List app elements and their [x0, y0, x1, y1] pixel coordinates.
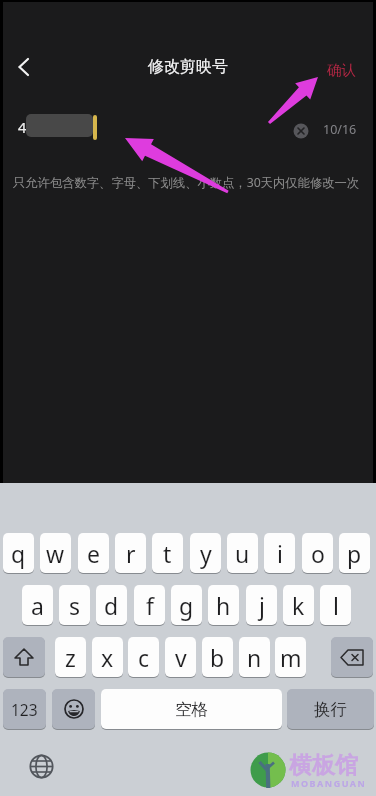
button[interactable]: [3, 637, 45, 677]
staticText: 4: [18, 117, 27, 137]
button[interactable]: [8, 52, 38, 82]
button[interactable]: w: [40, 533, 71, 573]
button[interactable]: [28, 753, 55, 780]
staticText: 123: [11, 699, 38, 720]
staticText: w: [46, 538, 65, 569]
button[interactable]: r: [115, 533, 146, 573]
button[interactable]: f: [134, 585, 165, 625]
button[interactable]: [292, 122, 310, 140]
staticText: n: [247, 642, 262, 673]
button[interactable]: n: [239, 637, 270, 677]
staticText: i: [277, 538, 283, 569]
staticText: m: [280, 642, 302, 673]
staticText: v: [175, 642, 187, 673]
button[interactable]: g: [171, 585, 202, 625]
staticText: u: [235, 538, 250, 569]
staticText: o: [311, 538, 325, 569]
button[interactable]: 空格: [101, 689, 282, 729]
staticText: p: [347, 538, 362, 569]
staticText: e: [87, 538, 100, 569]
staticText: j: [259, 590, 265, 621]
staticText: 修改剪映号: [148, 57, 228, 77]
staticText: s: [69, 590, 81, 621]
staticText: k: [292, 590, 305, 621]
button[interactable]: e: [78, 533, 109, 573]
button[interactable]: z: [55, 637, 86, 677]
button[interactable]: x: [92, 637, 123, 677]
staticText: c: [138, 642, 150, 673]
button[interactable]: s: [59, 585, 90, 625]
staticText: 10/16: [323, 121, 357, 138]
button[interactable]: o: [302, 533, 333, 573]
staticText: 空格: [175, 699, 208, 720]
staticText: 确认: [327, 61, 356, 79]
button[interactable]: 123: [3, 689, 46, 729]
button[interactable]: d: [96, 585, 127, 625]
button[interactable]: h: [208, 585, 239, 625]
button[interactable]: m: [275, 637, 306, 677]
button[interactable]: 换行: [287, 689, 374, 729]
staticText: b: [210, 642, 225, 673]
staticText: 横板馆: [289, 751, 358, 780]
button[interactable]: i: [264, 533, 295, 573]
staticText: 只允许包含数字、字母、下划线、小数点，30天内仅能修改一次: [13, 174, 360, 191]
staticText: t: [163, 538, 172, 569]
button[interactable]: c: [128, 637, 159, 677]
button[interactable]: j: [246, 585, 277, 625]
staticText: 换行: [314, 699, 347, 720]
staticText: q: [11, 538, 26, 569]
button[interactable]: u: [227, 533, 258, 573]
button[interactable]: q: [3, 533, 34, 573]
staticText: r: [126, 538, 136, 569]
staticText: MOBANGUAN: [291, 777, 367, 789]
staticText: z: [65, 642, 76, 673]
staticText: a: [31, 590, 44, 621]
staticText: l: [333, 590, 339, 621]
staticText: g: [179, 590, 194, 621]
button[interactable]: p: [339, 533, 370, 573]
staticText: x: [101, 642, 114, 673]
staticText: h: [216, 590, 231, 621]
button[interactable]: l: [320, 585, 351, 625]
button[interactable]: a: [22, 585, 53, 625]
button[interactable]: 确认: [318, 55, 364, 85]
button[interactable]: t: [152, 533, 183, 573]
staticText: y: [200, 538, 212, 569]
button[interactable]: y: [190, 533, 221, 573]
button[interactable]: v: [165, 637, 196, 677]
staticText: f: [146, 590, 154, 621]
button[interactable]: [331, 637, 373, 677]
button[interactable]: k: [283, 585, 314, 625]
button[interactable]: [52, 689, 95, 729]
button[interactable]: b: [202, 637, 233, 677]
staticText: d: [104, 590, 119, 621]
